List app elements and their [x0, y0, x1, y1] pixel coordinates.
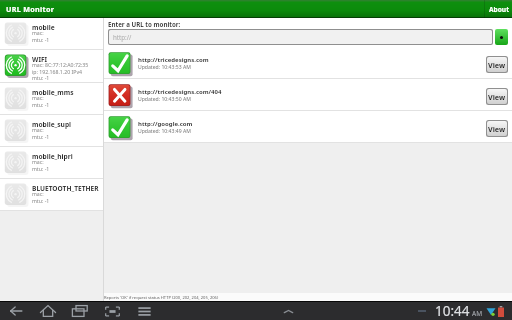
- button[interactable]: Back: [0, 302, 32, 320]
- staticText: mtu: -1: [32, 197, 50, 204]
- staticText: Reports 'OK' if request status HTTP (200…: [104, 295, 219, 301]
- button[interactable]: Notifications: [280, 303, 296, 319]
- button[interactable]: About: [485, 0, 512, 18]
- staticText: View: [488, 60, 506, 70]
- staticText: ip: 192.168.1.20 IPv4: [32, 68, 82, 75]
- staticText: mtu: -1: [32, 74, 50, 81]
- button[interactable]: http://: [109, 30, 492, 44]
- staticText: mtu: -1: [32, 101, 50, 108]
- staticText: http://: [113, 33, 132, 41]
- staticText: AM: [472, 309, 483, 318]
- staticText: mac:: [32, 94, 44, 101]
- staticText: mac:: [32, 158, 44, 165]
- staticText: http://google.com: [138, 120, 193, 128]
- staticText: View: [488, 92, 506, 102]
- staticText: WIFI: [32, 55, 48, 64]
- staticText: mobile_hipri: [32, 152, 73, 161]
- staticText: About: [489, 5, 509, 14]
- button[interactable]: http://tricedesigns.com: [104, 47, 512, 79]
- button[interactable]: View: [487, 89, 507, 104]
- button[interactable]: BLUETOOTH_TETHER: [0, 179, 103, 211]
- button[interactable]: mobile_mms: [0, 83, 103, 115]
- button[interactable]: System status: [418, 302, 512, 320]
- button[interactable]: Home: [32, 302, 64, 320]
- staticText: mtu: -1: [32, 133, 50, 140]
- button[interactable]: mobile: [0, 18, 103, 50]
- button[interactable]: Menu: [128, 302, 160, 320]
- staticText: mac:: [32, 126, 44, 133]
- staticText: mac:: [32, 190, 44, 197]
- staticText: Enter a URL to monitor:: [108, 20, 181, 28]
- staticText: URL Monitor: [6, 4, 55, 14]
- button[interactable]: View: [487, 121, 507, 136]
- staticText: Updated: 10:43:53 AM: [138, 64, 191, 71]
- staticText: Updated: 10:43:49 AM: [138, 128, 191, 135]
- staticText: Updated: 10:43:50 AM: [138, 96, 191, 103]
- staticText: mobile_supl: [32, 120, 72, 129]
- button[interactable]: Screenshot: [96, 302, 128, 320]
- staticText: mtu: -1: [32, 36, 50, 43]
- button[interactable]: WIFI: [0, 50, 103, 83]
- staticText: mtu: -1: [32, 165, 50, 172]
- button[interactable]: Add URL: [495, 29, 508, 45]
- staticText: View: [488, 124, 506, 134]
- staticText: mobile: [32, 23, 55, 32]
- button[interactable]: http://google.com: [104, 111, 512, 143]
- button[interactable]: mobile_hipri: [0, 147, 103, 179]
- button[interactable]: http://tricedesigns.com/404: [104, 79, 512, 111]
- staticText: mobile_mms: [32, 88, 74, 97]
- staticText: 10:44: [435, 302, 470, 320]
- staticText: http://tricedesigns.com/404: [138, 88, 222, 96]
- button[interactable]: mobile_supl: [0, 115, 103, 147]
- staticText: mac:: [32, 29, 44, 36]
- staticText: mac: 8C:77:12:A0:72:35: [32, 61, 89, 68]
- button[interactable]: Recent apps: [64, 302, 96, 320]
- button[interactable]: View: [487, 57, 507, 72]
- staticText: http://tricedesigns.com: [138, 56, 209, 64]
- staticText: BLUETOOTH_TETHER: [32, 184, 99, 193]
